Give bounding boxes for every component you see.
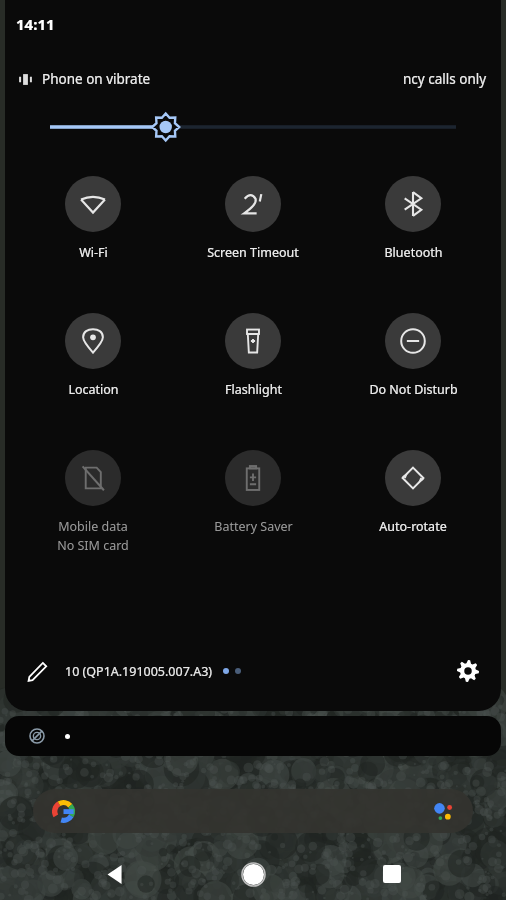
button[interactable]: Wi-Fi — [13, 176, 173, 261]
staticText: Location — [68, 381, 119, 398]
staticText: Flashlight — [225, 381, 282, 398]
button[interactable]: Edit tiles — [21, 655, 53, 687]
button[interactable]: Bluetooth — [333, 176, 493, 261]
button[interactable]: Mobile data — [13, 450, 173, 554]
button[interactable]: Do Not Disturb — [333, 313, 493, 398]
button[interactable]: Recents — [368, 850, 416, 898]
button[interactable]: Settings — [451, 654, 485, 688]
button[interactable]: Flashlight — [173, 313, 333, 398]
staticText: Auto-rotate — [379, 518, 447, 535]
button[interactable]: Search — [33, 789, 473, 833]
button[interactable]: Auto-rotate — [333, 450, 493, 535]
button[interactable] — [5, 716, 501, 756]
staticText: Do Not Disturb — [369, 381, 458, 398]
staticText: ncy calls only — [403, 70, 487, 88]
button[interactable]: Back — [91, 850, 139, 898]
staticText: Screen Timeout — [207, 244, 299, 261]
staticText: Battery Saver — [214, 518, 293, 535]
button[interactable]: Screen Timeout — [173, 176, 333, 261]
staticText: 10 (QP1A.191005.007.A3) — [65, 663, 213, 680]
button[interactable]: Home — [229, 850, 277, 898]
button[interactable]: Location — [13, 313, 173, 398]
staticText: Phone on vibrate — [42, 70, 151, 88]
button[interactable]: Battery Saver — [173, 450, 333, 535]
button[interactable]: Brightness — [50, 110, 456, 144]
staticText: Wi-Fi — [79, 244, 108, 261]
staticText: Bluetooth — [384, 244, 443, 261]
staticText: 14:11 — [16, 14, 55, 34]
staticText: No SIM card — [57, 537, 129, 554]
staticText: Mobile data — [58, 518, 128, 535]
